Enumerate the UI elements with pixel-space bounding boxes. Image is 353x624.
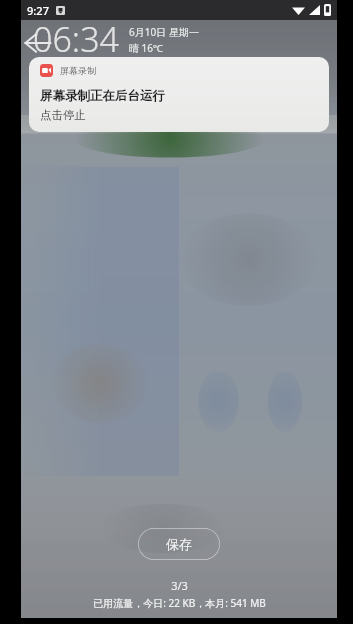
staticText: 保存 [166,536,192,552]
staticText: 9:27 [27,3,49,18]
button[interactable]: Back [23,28,53,58]
button[interactable]: 屏幕录制 [29,57,329,132]
button[interactable]: 保存 [138,528,220,560]
staticText: 点击停止 [40,108,86,122]
button[interactable]: 06:34 [33,16,199,62]
staticText: 3/3 [171,578,188,593]
staticText: 屏幕录制 [60,65,96,76]
staticText: 06:34 [33,16,119,62]
staticText: 已用流量，今日: 22 KB，本月: 541 MB [93,596,266,610]
staticText: 晴 16℃ [129,41,163,55]
staticText: 屏幕录制正在后台运行 [40,88,165,104]
staticText: 6月10日 星期一 [129,25,199,39]
